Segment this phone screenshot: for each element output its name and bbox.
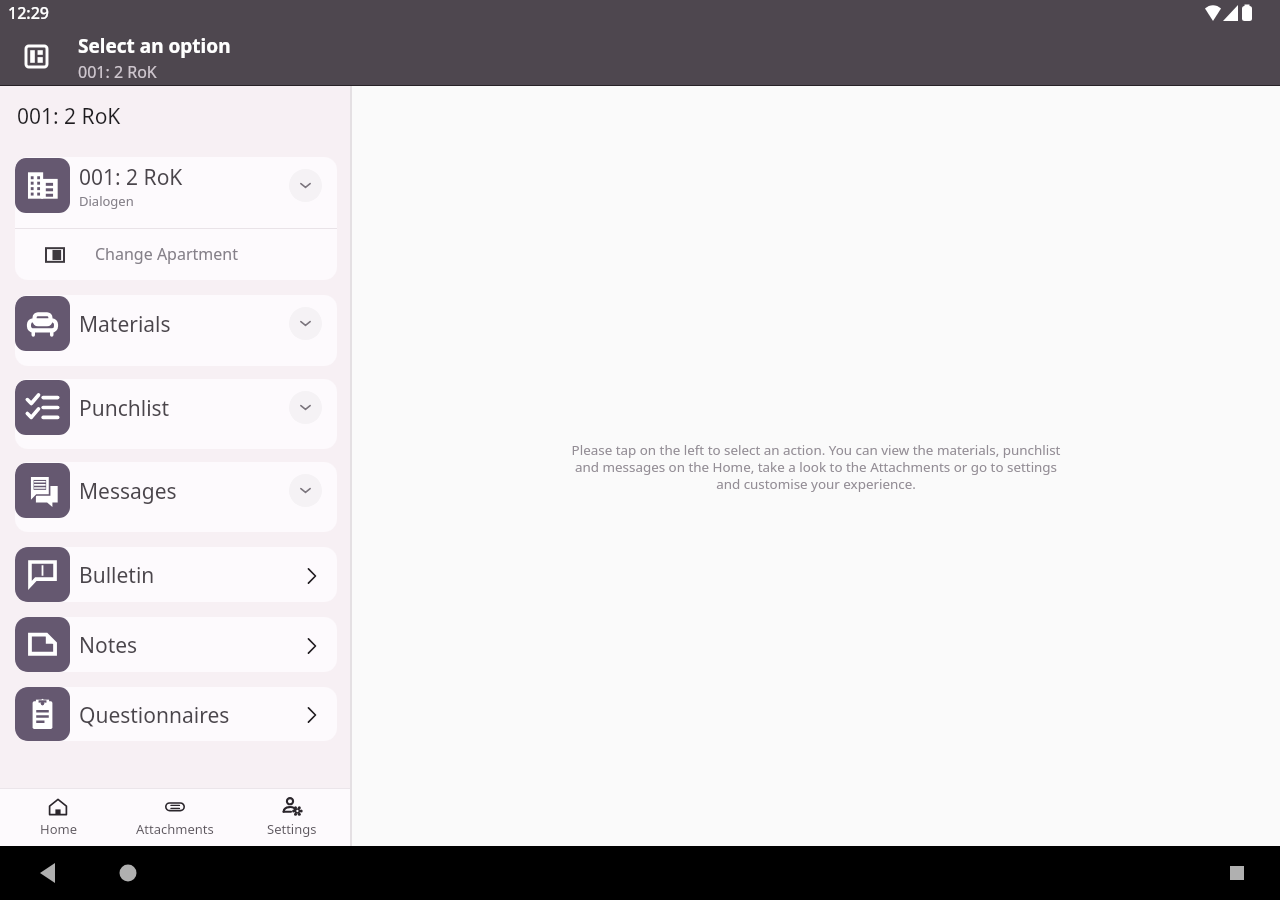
button[interactable]: Bulletin bbox=[15, 547, 337, 602]
staticText: Messages bbox=[79, 477, 289, 506]
staticText: Notes bbox=[79, 631, 303, 660]
button[interactable]: Home bbox=[0, 789, 116, 846]
button[interactable]: Attachments bbox=[116, 789, 233, 846]
staticText: Select an option bbox=[78, 33, 231, 59]
button[interactable]: Open navigation menu bbox=[16, 36, 56, 76]
staticText: Questionnaires bbox=[79, 701, 303, 730]
staticText: Materials bbox=[79, 310, 289, 339]
staticText: Punchlist bbox=[79, 394, 289, 423]
staticText: 001: 2 RoK bbox=[78, 61, 157, 83]
staticText: Dialogen bbox=[79, 192, 134, 210]
staticText: Attachments bbox=[136, 820, 214, 838]
staticText: 001: 2 RoK bbox=[17, 102, 121, 131]
staticText: Bulletin bbox=[79, 561, 303, 590]
button[interactable]: Notes bbox=[15, 617, 337, 672]
button[interactable]: Punchlist bbox=[15, 379, 337, 449]
staticText: 12:29 bbox=[8, 2, 49, 24]
button[interactable]: 001: 2 RoK bbox=[15, 157, 337, 228]
staticText: 001: 2 RoK bbox=[79, 163, 183, 192]
button[interactable]: Change Apartment bbox=[15, 229, 337, 280]
button[interactable]: Materials bbox=[15, 295, 337, 366]
button[interactable]: Settings bbox=[233, 789, 350, 846]
button[interactable]: Messages bbox=[15, 462, 337, 532]
staticText: Settings bbox=[267, 820, 317, 838]
staticText: Home bbox=[40, 820, 77, 838]
button[interactable]: Questionnaires bbox=[15, 687, 337, 741]
staticText: Please tap on the left to select an acti… bbox=[570, 441, 1062, 493]
staticText: Change Apartment bbox=[95, 243, 238, 265]
